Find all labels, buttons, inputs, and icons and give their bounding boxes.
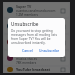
- staticText: musica.viva.es: [16, 57, 37, 61]
- button[interactable]: More options for YouTube broadcast: [59, 67, 66, 72]
- staticText: Canalmundo news: [16, 20, 48, 25]
- staticText: radio.directo.net: [16, 41, 41, 45]
- staticText: YouTube broadcast: [16, 67, 51, 72]
- staticText: somos.informar.com: [16, 25, 46, 29]
- staticText: Do you want to stop getting messages fro…: [11, 29, 62, 45]
- button[interactable]: Radio hora: [4, 35, 69, 49]
- button[interactable]: YouTube broadcast: [4, 67, 69, 72]
- button[interactable]: Canalmundo news: [4, 19, 69, 33]
- button[interactable]: More options for Super TV: [59, 7, 66, 14]
- button[interactable]: More options for Canalmundo news: [59, 23, 66, 30]
- staticText: Unsubscribe: [39, 48, 60, 53]
- staticText: 1.2M members: [16, 13, 38, 17]
- button[interactable]: Musica viva: [4, 51, 69, 65]
- staticText: Cancel: [22, 48, 33, 53]
- button[interactable]: More options for Musica viva: [59, 55, 66, 62]
- staticText: Super TV: [16, 4, 32, 9]
- staticText: 78K members: [16, 61, 37, 65]
- button[interactable]: Unsubscribe: [37, 47, 62, 54]
- staticText: 884K members: [16, 29, 38, 33]
- staticText: cuantos.canalmundo.ecom: [16, 9, 56, 13]
- staticText: Unsubscribe: [11, 21, 39, 27]
- button[interactable]: More options for Radio hora: [59, 39, 66, 46]
- button[interactable]: Cancel: [20, 47, 35, 54]
- button[interactable]: Super TV: [4, 3, 69, 17]
- staticText: Radio hora: [16, 36, 35, 41]
